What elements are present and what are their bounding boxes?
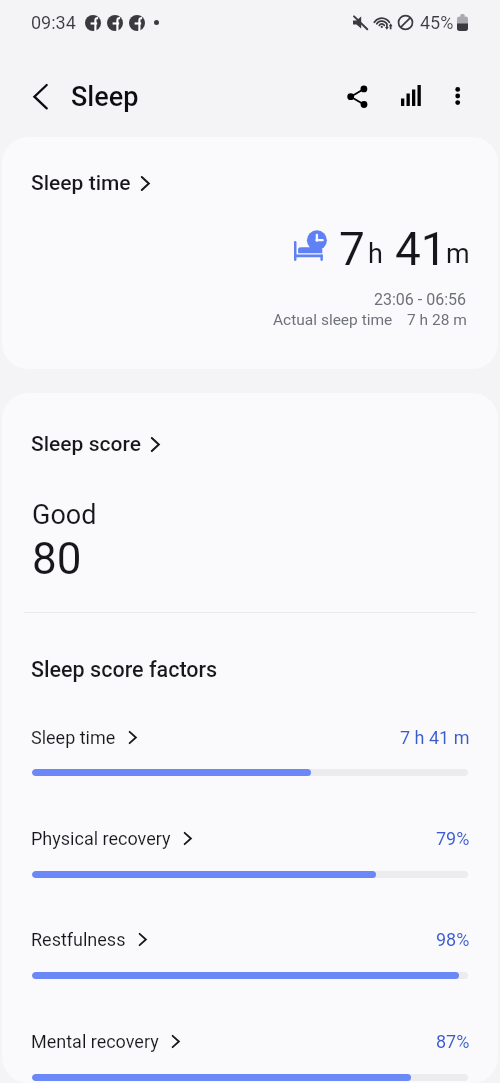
staticText: 23:06 - 06:56: [374, 290, 467, 309]
staticText: 7 h 41 m: [400, 727, 470, 748]
staticText: 80: [32, 533, 82, 585]
button[interactable]: Share: [332, 70, 372, 110]
staticText: 79%: [436, 828, 470, 849]
staticText: 41: [395, 222, 447, 276]
button[interactable]: Sleep score: [31, 432, 160, 457]
button[interactable]: Back: [19, 68, 61, 110]
staticText: Restfulness: [31, 929, 126, 950]
staticText: Sleep score factors: [31, 657, 218, 682]
staticText: Mental recovery: [31, 1031, 159, 1052]
button[interactable]: Sleep time: [2, 717, 498, 786]
staticText: 7: [339, 222, 365, 276]
staticText: Sleep time: [31, 727, 116, 748]
staticText: Physical recovery: [31, 828, 171, 849]
staticText: Sleep time: [31, 171, 131, 196]
staticText: 7 h 28 m: [407, 311, 467, 329]
staticText: Good: [32, 499, 97, 531]
staticText: m: [446, 238, 470, 270]
staticText: Sleep score: [31, 432, 141, 457]
button[interactable]: More options: [438, 70, 478, 110]
staticText: 45%: [420, 12, 454, 33]
button[interactable]: Mental recovery: [2, 1021, 498, 1083]
staticText: h: [368, 238, 383, 270]
staticText: Sleep: [71, 81, 139, 113]
button[interactable]: Sleep time: [2, 137, 498, 369]
button[interactable]: Sleep time: [31, 171, 150, 196]
staticText: 87%: [436, 1031, 470, 1052]
staticText: Actual sleep time: [273, 311, 393, 329]
staticText: 09:34: [31, 12, 76, 33]
button[interactable]: Physical recovery: [2, 818, 498, 888]
button[interactable]: Statistics: [391, 70, 431, 110]
staticText: 98%: [436, 929, 470, 950]
button[interactable]: Restfulness: [2, 919, 498, 989]
